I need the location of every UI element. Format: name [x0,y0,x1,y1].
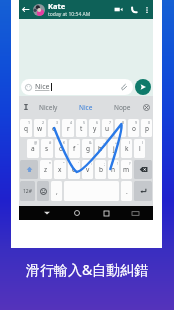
button[interactable]: c [68,160,80,179]
button[interactable]: p [141,119,152,137]
button[interactable]: Nope [104,96,141,118]
staticText: 7 [109,120,112,125]
staticText: ( [129,140,131,145]
staticText: m [123,165,130,174]
button[interactable]: Call [127,3,140,16]
button[interactable]: Attach file [120,83,129,92]
staticText: Nicely [39,103,58,112]
button[interactable]: enter [134,181,152,201]
button[interactable]: r [62,119,74,137]
button[interactable]: Recent apps [100,207,112,219]
staticText: + [115,140,118,145]
button[interactable]: b [95,160,106,179]
button[interactable]: m [121,160,132,179]
staticText: k [125,144,129,153]
staticText: q [24,124,28,133]
button[interactable]: i [115,119,126,137]
staticText: v [86,165,90,174]
staticText: . [126,187,128,196]
button[interactable]: v [82,160,93,179]
button[interactable]: n [108,160,119,179]
staticText: , [56,187,58,196]
button[interactable]: Nice [67,96,104,118]
staticText: @ [34,140,38,145]
button[interactable]: w [34,119,46,137]
staticText: l [139,144,141,153]
button[interactable]: z [40,160,52,179]
button[interactable]: t [76,119,87,137]
staticText: d [59,144,63,153]
staticText: r [67,124,70,133]
staticText: 6 [96,120,99,125]
button[interactable]: f [69,139,80,158]
staticText: p [145,124,149,133]
button[interactable]: x [54,160,66,179]
staticText: c [72,165,76,174]
staticText: 5 [83,120,86,125]
staticText: 12# [23,188,32,195]
staticText: ! [117,161,118,166]
staticText: - [103,140,105,145]
staticText: 3 [56,120,59,125]
button[interactable]: a [27,139,39,158]
staticText: f [73,144,76,153]
staticText: 8 [122,120,125,125]
staticText: " [63,161,65,166]
button[interactable]: Hide keyboard [129,207,141,219]
staticText: j [113,144,115,153]
button[interactable]: k [121,139,132,158]
button[interactable]: backspace [134,160,152,179]
staticText: Kate [48,1,66,11]
button[interactable]: j [108,139,119,158]
button[interactable]: Nicely [30,96,67,118]
button[interactable]: 12# [20,181,35,201]
button[interactable]: h [95,139,106,158]
staticText: i [120,124,122,133]
staticText: Nice [79,103,93,112]
button[interactable]: Send [135,79,151,95]
button[interactable]: Edit text [22,103,30,111]
staticText: : [91,161,92,166]
button[interactable]: Nice [21,79,133,95]
staticText: & [89,140,92,145]
button[interactable]: q [20,119,32,137]
button[interactable]: Home [71,207,83,219]
staticText: u [105,124,110,133]
staticText: e [52,124,56,133]
staticText: # [49,140,52,145]
button[interactable]: s [41,139,53,158]
button[interactable]: More options [141,4,152,15]
staticText: o [132,124,136,133]
button[interactable]: , [51,181,62,201]
staticText: h [98,144,103,153]
button[interactable]: Back [20,4,31,15]
button[interactable]: d [55,139,67,158]
button[interactable]: g [82,139,93,158]
button[interactable]: l [134,139,145,158]
staticText: € [63,140,66,145]
button[interactable]: y [89,119,100,137]
staticText: ' [78,161,79,166]
staticText: 1 [28,120,31,125]
staticText: n [111,165,116,174]
staticText: 0 [148,120,151,125]
button[interactable]: u [102,119,113,137]
button[interactable]: e [48,119,60,137]
staticText: 滑行輸入&自動糾錯 [0,260,174,279]
staticText: today at 10:54 AM [48,11,91,18]
staticText: _ [77,140,79,145]
staticText: y [93,124,97,133]
staticText: ) [142,140,144,145]
staticText: Nope [114,103,131,112]
button[interactable]: o [128,119,139,137]
staticText: s [45,144,49,153]
button[interactable]: Back [41,207,53,219]
button[interactable]: . [121,181,132,201]
button[interactable]: emoji [37,181,49,201]
button[interactable]: Dismiss suggestions [141,102,151,112]
staticText: z [44,165,48,174]
button[interactable]: Video call [112,3,125,16]
staticText: ? [129,161,131,166]
button[interactable]: shift [20,160,38,179]
